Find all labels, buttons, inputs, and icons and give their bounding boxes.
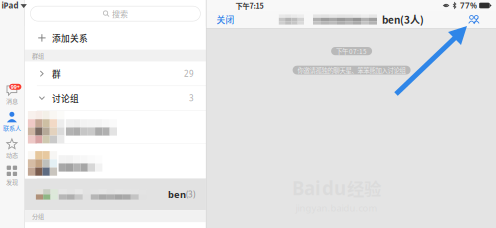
- staticText: 29: [184, 68, 194, 79]
- button[interactable]: 群: [25, 62, 206, 86]
- staticText: ben: [168, 188, 186, 201]
- staticText: 讨论组: [52, 92, 79, 104]
- button[interactable]: [25, 111, 206, 144]
- button[interactable]: 联系人: [0, 111, 24, 132]
- staticText: (3): [186, 189, 195, 200]
- button[interactable]: 发现: [0, 165, 24, 186]
- staticText: 添加关系: [52, 32, 88, 44]
- staticText: 3: [189, 93, 194, 103]
- staticText: 联系人: [3, 123, 21, 132]
- staticText: 消息: [6, 96, 18, 105]
- staticText: ben(3人): [382, 12, 424, 27]
- staticText: 77%: [460, 0, 477, 11]
- button[interactable]: 关闭: [213, 11, 239, 28]
- staticText: 分组: [32, 212, 44, 221]
- button[interactable]: [25, 144, 206, 179]
- button[interactable]: 99+: [0, 84, 24, 105]
- staticText: du: [322, 176, 346, 200]
- staticText: 搜索: [112, 8, 128, 19]
- staticText: 关闭: [217, 13, 235, 26]
- staticText: 群组: [32, 51, 44, 60]
- staticText: 群: [52, 67, 61, 80]
- button[interactable]: ben: [25, 179, 206, 210]
- staticText: iPad: [1, 0, 18, 11]
- staticText: 发现: [6, 177, 18, 186]
- button[interactable]: 搜索: [30, 6, 200, 21]
- staticText: 你邀请孤独的聊天星、笨笨熊加入讨论组: [298, 65, 406, 75]
- staticText: 下午 07:15: [336, 46, 367, 56]
- button[interactable]: 讨论组: [25, 86, 206, 110]
- staticText: 下午7:15: [236, 0, 264, 11]
- button[interactable]: 添加关系: [25, 26, 206, 50]
- staticText: 动态: [6, 150, 18, 159]
- button[interactable]: 群成员: [464, 11, 484, 28]
- staticText: 经验: [347, 175, 381, 201]
- staticText: Bai: [292, 176, 321, 200]
- button[interactable]: 动态: [0, 138, 24, 159]
- staticText: 99+: [11, 83, 20, 90]
